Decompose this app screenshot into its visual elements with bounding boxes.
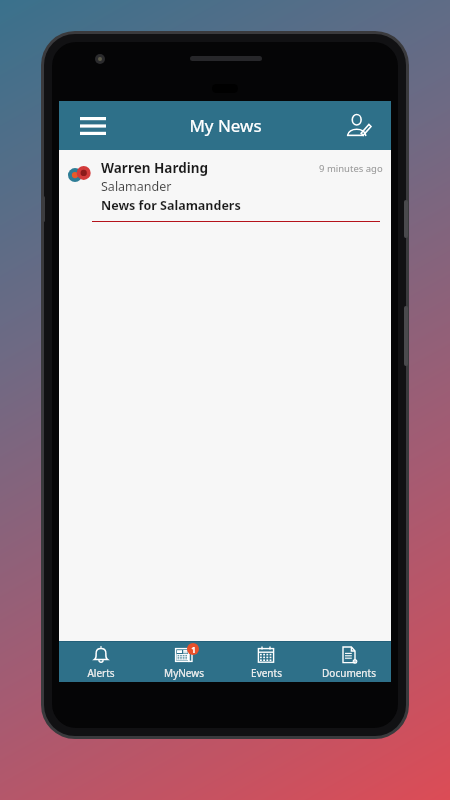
staticText: MyNews — [164, 666, 204, 680]
button[interactable]: Alerts — [60, 641, 142, 682]
staticText: Warren Harding — [101, 159, 319, 177]
button[interactable]: Open navigation menu — [73, 106, 113, 146]
staticText: My News — [189, 114, 262, 137]
staticText: 1 — [191, 644, 196, 655]
button[interactable]: 1 — [143, 641, 225, 682]
button[interactable]: Edit profile — [337, 105, 379, 147]
staticText: Salamander — [101, 178, 172, 195]
staticText: Events — [251, 666, 282, 680]
button[interactable]: Events — [225, 641, 307, 682]
staticText: Documents — [322, 666, 376, 680]
staticText: Alerts — [87, 666, 115, 680]
button[interactable]: Documents — [308, 641, 390, 682]
staticText: News for Salamanders — [101, 197, 241, 214]
button[interactable]: Warren Harding — [59, 150, 391, 222]
staticText: 9 minutes ago — [319, 162, 383, 175]
